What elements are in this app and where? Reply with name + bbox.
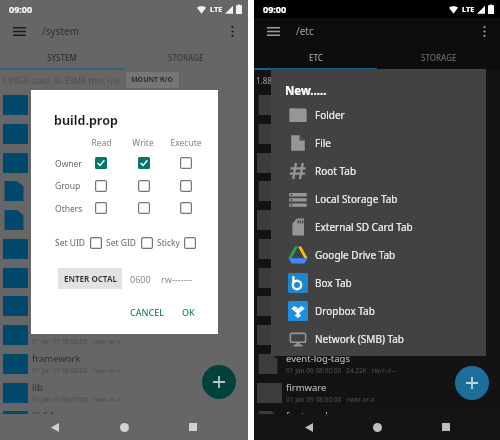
staticText: 01 Jan 09 08:00:00 <box>32 165 88 174</box>
button[interactable]: init.d <box>254 291 500 320</box>
button[interactable]: OK <box>178 302 199 322</box>
staticText: rw-r--r-- <box>372 366 396 375</box>
button[interactable]: Navigation menu <box>8 20 30 42</box>
button[interactable]: fonts <box>0 291 248 320</box>
button[interactable]: Back <box>41 414 69 440</box>
button[interactable]: build.prop <box>0 176 248 205</box>
button[interactable]: audio_effects.conf <box>254 119 500 148</box>
button[interactable]: fake-libs64 <box>0 263 248 292</box>
button[interactable]: Toggle permission <box>95 180 107 192</box>
button[interactable]: bin <box>0 119 248 148</box>
button[interactable]: compatibility_matrix.xml <box>0 205 248 234</box>
button[interactable]: ETC <box>254 44 377 70</box>
button[interactable]: framework <box>0 349 248 378</box>
button[interactable]: Network (SMB) Tab <box>271 325 486 353</box>
button[interactable]: Add <box>202 365 236 399</box>
button[interactable]: dhcpcd <box>254 205 500 234</box>
staticText: Read <box>91 137 112 149</box>
staticText: 01 Jan 09 08:00:00 <box>286 423 342 432</box>
button[interactable]: Navigation menu <box>262 20 284 42</box>
button[interactable]: More options <box>221 20 243 42</box>
staticText: 0600 <box>130 273 151 285</box>
button[interactable]: Toggle permission <box>180 157 192 169</box>
button[interactable]: STORAGE <box>124 44 248 70</box>
button[interactable]: Home <box>110 414 138 440</box>
button[interactable]: ENTER OCTAL <box>58 268 122 289</box>
button[interactable]: firmware <box>254 378 500 407</box>
button[interactable]: Set UID <box>90 237 102 249</box>
button[interactable]: MOUNT R/O <box>126 72 179 88</box>
staticText: 09:00 <box>263 3 287 15</box>
staticText: init.d <box>286 294 309 307</box>
button[interactable]: Recent apps <box>432 414 460 440</box>
button[interactable]: gps.conf <box>254 234 500 263</box>
staticText: 1.88GB used, 86.83MB free, r/w <box>2 75 121 86</box>
staticText: 01 Jan 09 08:00:00 <box>286 222 342 231</box>
button[interactable]: etc2 <box>0 320 248 349</box>
button[interactable]: Recent apps <box>179 414 207 440</box>
button[interactable]: Add <box>455 366 489 400</box>
staticText: 1.88GB used, 86.83MB free, r/w <box>256 75 375 86</box>
staticText: Local Storage Tab <box>315 192 398 206</box>
staticText: 01 Jan 09 08:00:00 <box>286 193 342 202</box>
button[interactable]: lib <box>0 378 248 407</box>
button[interactable]: hosts <box>254 263 500 292</box>
button[interactable]: bluetooth <box>254 148 500 177</box>
button[interactable]: security <box>254 320 500 349</box>
button[interactable]: Toggle permission <box>95 157 107 169</box>
staticText: rwxr-xr-x <box>347 222 375 231</box>
staticText: Root Tab <box>315 164 357 178</box>
button[interactable]: More options <box>473 20 495 42</box>
staticText: Folder <box>315 108 345 122</box>
button[interactable]: Local Storage Tab <box>271 185 486 213</box>
button[interactable]: Toggle permission <box>138 157 150 169</box>
button[interactable]: Sticky <box>184 237 196 249</box>
staticText: 09:00 <box>9 3 33 15</box>
button[interactable]: CANCEL <box>126 302 169 322</box>
button[interactable]: app <box>0 90 248 119</box>
staticText: 01 Jan 09 08:00:00 <box>32 337 88 346</box>
button[interactable]: clatd.conf <box>254 176 500 205</box>
button[interactable]: SYSTEM <box>0 44 124 70</box>
button[interactable]: Back <box>295 414 323 440</box>
staticText: bluetooth <box>286 151 330 164</box>
button[interactable]: fonts.xml <box>254 406 500 435</box>
button[interactable]: File <box>271 129 486 157</box>
staticText: MOUNT R/O <box>131 75 174 85</box>
button[interactable]: Set GID <box>141 237 153 249</box>
staticText: 1.24K <box>346 193 363 202</box>
button[interactable]: lib64 <box>0 406 248 435</box>
button[interactable]: Google Drive Tab <box>271 241 486 269</box>
button[interactable]: apns-conf.xml <box>254 90 500 119</box>
staticText: 01 Jan 09 08:00:00 <box>286 280 342 289</box>
button[interactable]: Dropbox Tab <box>271 297 486 325</box>
button[interactable]: event-log-tags <box>254 349 500 378</box>
staticText: build.prop <box>32 179 79 192</box>
button[interactable]: Toggle permission <box>138 202 150 214</box>
button[interactable]: fake-libs <box>0 234 248 263</box>
staticText: 01 Jan 09 08:00:00 <box>32 107 88 116</box>
button[interactable]: Root Tab <box>271 157 486 185</box>
button[interactable]: etc <box>0 148 248 177</box>
button[interactable]: External SD Card Tab <box>271 213 486 241</box>
button[interactable]: Toggle permission <box>180 202 192 214</box>
staticText: 01 Jan 09 08:00:00 <box>286 251 342 260</box>
button[interactable]: Toggle permission <box>138 180 150 192</box>
button[interactable]: Folder <box>271 101 486 129</box>
staticText: File <box>315 136 331 150</box>
button[interactable]: Box Tab <box>271 269 486 297</box>
button[interactable]: Toggle permission <box>95 202 107 214</box>
button[interactable]: Toggle permission <box>180 180 192 192</box>
button[interactable]: Home <box>363 414 391 440</box>
button[interactable]: STORAGE <box>377 44 500 70</box>
staticText: 01 Jan 09 08:00:00 <box>32 280 88 289</box>
staticText: /etc <box>296 24 314 38</box>
